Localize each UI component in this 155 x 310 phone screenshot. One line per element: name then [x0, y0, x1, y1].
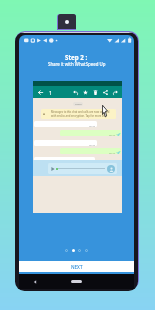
staticText: 09:14	[109, 133, 116, 136]
button[interactable]: 08:45	[34, 157, 95, 163]
button[interactable]: Reply	[72, 89, 78, 95]
button[interactable]: Back	[33, 280, 37, 284]
staticText: 08:45	[89, 143, 96, 146]
staticText: 08:45	[89, 124, 96, 127]
button[interactable]: 09:14	[60, 148, 121, 154]
button[interactable]: Messages to this chat and calls are now …	[41, 109, 116, 119]
button[interactable]: Delete	[92, 89, 98, 95]
staticText: TODAY	[75, 103, 82, 106]
staticText: 1	[49, 89, 53, 96]
button[interactable]: Home	[71, 280, 82, 283]
staticText: NEXT	[71, 264, 83, 270]
button[interactable]: Forward	[112, 89, 118, 95]
button[interactable]: Share	[102, 89, 108, 95]
staticText: 09:14	[109, 151, 116, 154]
staticText: Share it with WhatSpeed Up	[48, 61, 106, 67]
button[interactable]: NEXT	[19, 261, 134, 272]
staticText: Messages to this chat and calls are now …	[51, 110, 110, 118]
button[interactable]: Star	[82, 89, 88, 95]
button[interactable]	[33, 160, 122, 176]
staticText: Step 2 :	[65, 53, 88, 61]
button[interactable]: 09:14	[60, 130, 121, 136]
button[interactable]: 08:45	[34, 121, 97, 127]
button[interactable]: 08:45	[34, 140, 97, 146]
button[interactable]: Back	[37, 89, 43, 95]
